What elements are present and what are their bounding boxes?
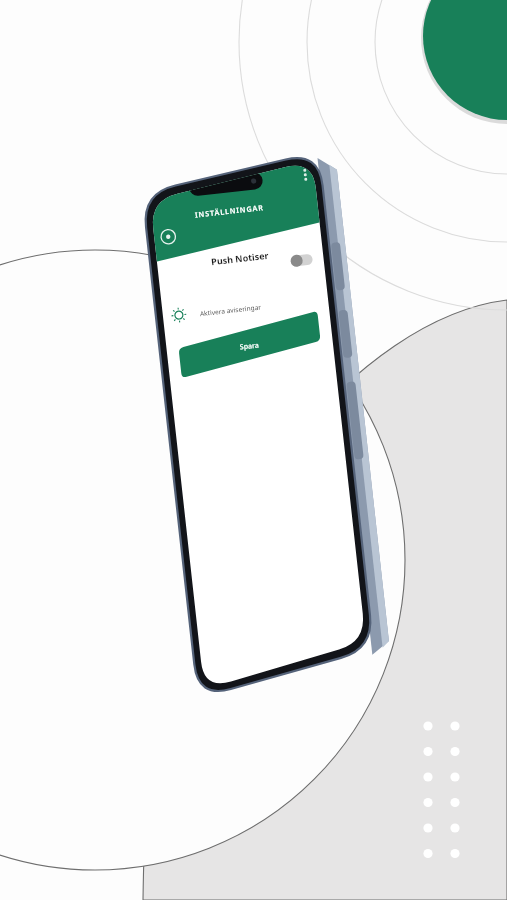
button[interactable]: Inställningar push-notiser skärm [0, 0, 507, 900]
